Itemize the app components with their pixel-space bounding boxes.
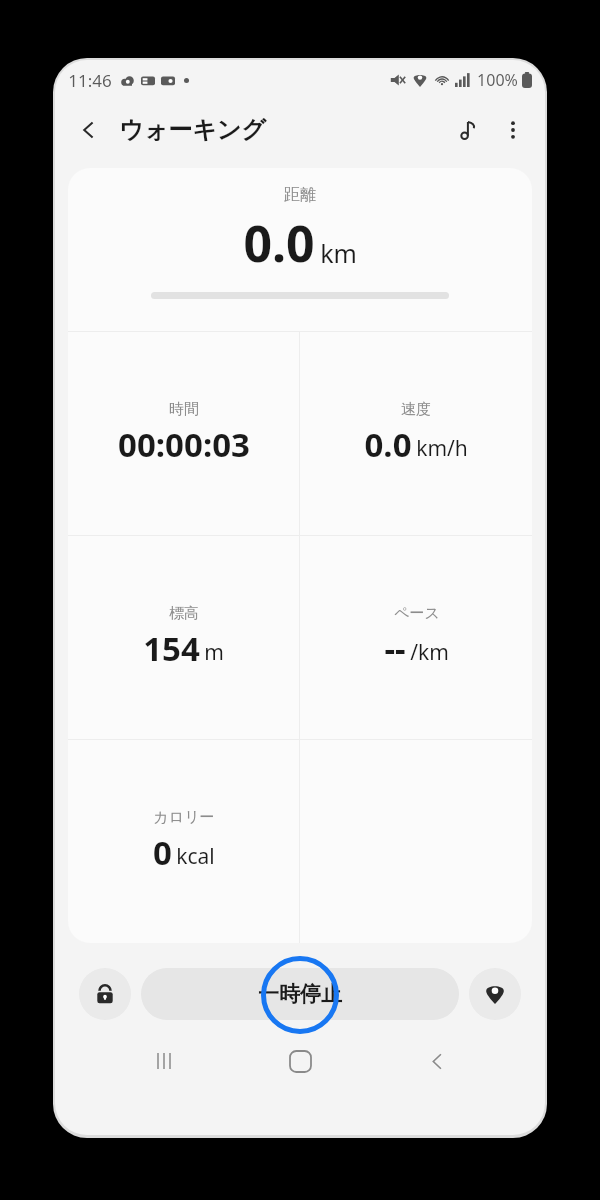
staticText: 速度 xyxy=(401,400,431,419)
button[interactable]: 距離 xyxy=(68,168,532,331)
button[interactable]: Home xyxy=(272,1033,328,1089)
button[interactable]: Back xyxy=(67,108,111,152)
staticText: km xyxy=(320,236,357,270)
button[interactable]: ペース xyxy=(300,536,532,739)
staticText: ウォーキング xyxy=(119,115,266,145)
staticText: 11:46 xyxy=(68,69,112,92)
button[interactable]: Music xyxy=(447,108,491,152)
staticText: 0.0 xyxy=(364,422,412,467)
button[interactable]: 一時停止 xyxy=(141,968,459,1020)
button[interactable]: Lock screen xyxy=(79,968,131,1020)
button[interactable]: カロリー xyxy=(68,740,299,943)
staticText: 標高 xyxy=(169,604,199,623)
button[interactable]: 標高 xyxy=(68,536,299,739)
button[interactable]: Map location xyxy=(469,968,521,1020)
staticText: カロリー xyxy=(153,808,215,827)
staticText: -- xyxy=(384,626,406,671)
staticText: 154 xyxy=(143,626,200,671)
staticText: m xyxy=(204,638,224,667)
staticText: 時間 xyxy=(169,400,199,419)
staticText: ペース xyxy=(394,604,440,623)
staticText: 0.0 xyxy=(243,209,315,277)
button[interactable]: Recent apps xyxy=(136,1033,192,1089)
staticText: 100% xyxy=(477,69,518,91)
button[interactable]: Back xyxy=(409,1033,465,1089)
staticText: /km xyxy=(410,638,449,667)
staticText: km/h xyxy=(416,434,468,463)
button[interactable]: 時間 xyxy=(68,332,299,535)
button[interactable]: More options xyxy=(491,108,535,152)
staticText: 00:00:03 xyxy=(118,422,250,467)
staticText: kcal xyxy=(176,842,215,871)
staticText: 一時停止 xyxy=(258,981,342,1007)
staticText: 距離 xyxy=(284,185,316,205)
staticText: 0 xyxy=(153,830,172,875)
button[interactable]: 速度 xyxy=(300,332,532,535)
